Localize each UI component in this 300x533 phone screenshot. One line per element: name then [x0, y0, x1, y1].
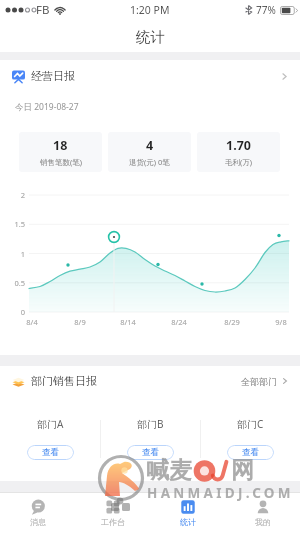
staticText: 部门C [237, 417, 264, 431]
staticText: 我的 [255, 517, 271, 527]
staticText: 1.5 [0, 219, 25, 229]
staticText: 查看 [142, 447, 159, 458]
button[interactable]: 查看 [127, 445, 174, 460]
staticText: 统计 [180, 517, 196, 527]
button[interactable]: 部门销售日报 [0, 366, 300, 396]
staticText: 4 [146, 137, 154, 154]
staticText: 1:20 PM [130, 3, 170, 17]
staticText: 毛利(万) [225, 157, 252, 167]
staticText: 1.70 [226, 137, 251, 154]
staticText: 销售笔数(笔) [40, 157, 82, 167]
button[interactable]: 消息 [0, 493, 75, 533]
staticText: 统计 [136, 28, 165, 46]
staticText: 1 [0, 249, 25, 259]
button[interactable]: 部门B [101, 396, 200, 481]
button[interactable]: 我的 [225, 493, 300, 533]
staticText: 部门A [37, 417, 64, 431]
staticText: 9/8 [267, 317, 295, 327]
staticText: 查看 [242, 447, 259, 458]
button[interactable]: 查看 [27, 445, 74, 460]
staticText: 工作台 [101, 517, 125, 527]
staticText: 部门销售日报 [31, 374, 97, 388]
staticText: HANMAIDJ.COM [147, 484, 294, 502]
button[interactable]: 查看 [227, 445, 274, 460]
staticText: 消息 [30, 517, 46, 527]
button[interactable]: 经营日报 [0, 60, 300, 92]
staticText: 部门B [137, 417, 164, 431]
staticText: 8/24 [165, 317, 193, 327]
button[interactable]: 部门C [201, 396, 300, 481]
button[interactable]: 统计 [150, 493, 225, 533]
staticText: 退货(元) 0笔 [129, 157, 170, 167]
staticText: 77% [256, 3, 276, 17]
button[interactable]: 工作台 [75, 493, 150, 533]
staticText: 8/9 [66, 317, 94, 327]
staticText: 全部部门 [241, 376, 277, 387]
button[interactable]: 部门A [0, 396, 100, 481]
staticText: 8/4 [18, 317, 46, 327]
button[interactable]: 1.70 [197, 132, 280, 172]
button[interactable]: 4 [108, 132, 191, 172]
staticText: 今日 2019-08-27 [15, 101, 79, 113]
staticText: 8/14 [114, 317, 142, 327]
staticText: 网 [231, 456, 254, 485]
staticText: 8/29 [218, 317, 246, 327]
staticText: 喊麦 [146, 456, 192, 485]
button[interactable]: 18 [19, 132, 102, 172]
staticText: 经营日报 [31, 69, 75, 83]
staticText: 查看 [42, 447, 59, 458]
staticText: 0.5 [0, 278, 25, 288]
staticText: FB [36, 2, 50, 18]
staticText: 18 [53, 137, 68, 154]
staticText: 0 [0, 307, 25, 317]
staticText: 2 [0, 190, 25, 200]
